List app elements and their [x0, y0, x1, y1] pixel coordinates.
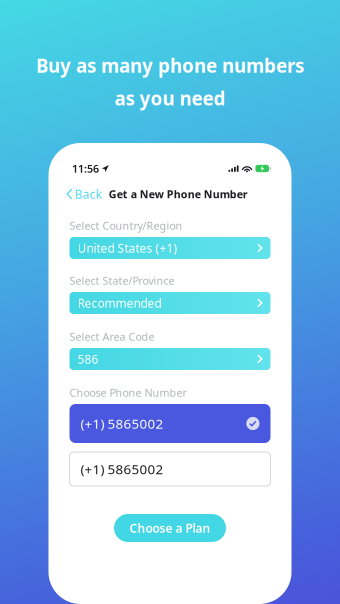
staticText: Recommended	[77, 295, 161, 311]
staticText: (+1) 5865002	[80, 460, 163, 478]
button[interactable]: 586	[69, 348, 270, 370]
staticText: Get a New Phone Number	[109, 187, 248, 201]
staticText: 586	[77, 351, 98, 367]
staticText: as you need	[114, 86, 225, 111]
staticText: 11:56	[72, 161, 99, 176]
staticText: Choose Phone Number	[69, 385, 186, 400]
staticText: United States (+1)	[77, 240, 177, 256]
button[interactable]: Choose a Plan	[114, 514, 226, 542]
staticText: Buy as many phone numbers	[36, 53, 304, 78]
button[interactable]: United States (+1)	[69, 237, 270, 259]
button[interactable]: Back	[66, 186, 102, 202]
button[interactable]: Recommended	[69, 292, 270, 314]
staticText: Select Area Code	[69, 329, 154, 344]
staticText: Select Country/Region	[69, 218, 182, 233]
staticText: (+1) 5865002	[80, 415, 163, 432]
staticText: Back	[75, 186, 102, 202]
button[interactable]: (+1) 5865002	[69, 404, 270, 443]
staticText: Select State/Province	[69, 273, 174, 288]
staticText: Choose a Plan	[129, 520, 210, 536]
